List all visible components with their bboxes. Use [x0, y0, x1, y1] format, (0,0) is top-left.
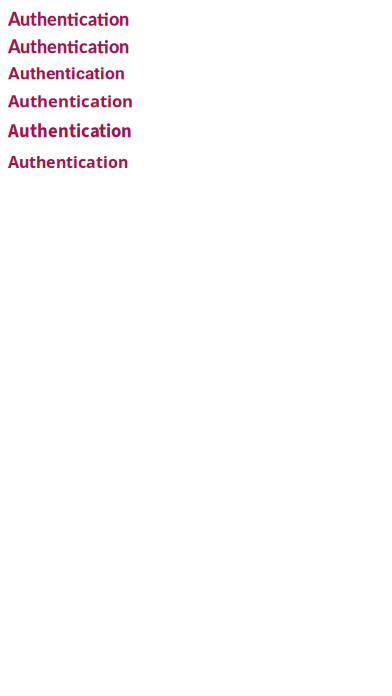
staticText: Authentication — [8, 8, 129, 30]
staticText: Authentication — [8, 63, 125, 83]
staticText: Authentication — [8, 151, 128, 173]
staticText: Authentication — [8, 89, 133, 112]
staticText: Authentication — [8, 118, 132, 145]
staticText: Authentication — [8, 36, 129, 57]
